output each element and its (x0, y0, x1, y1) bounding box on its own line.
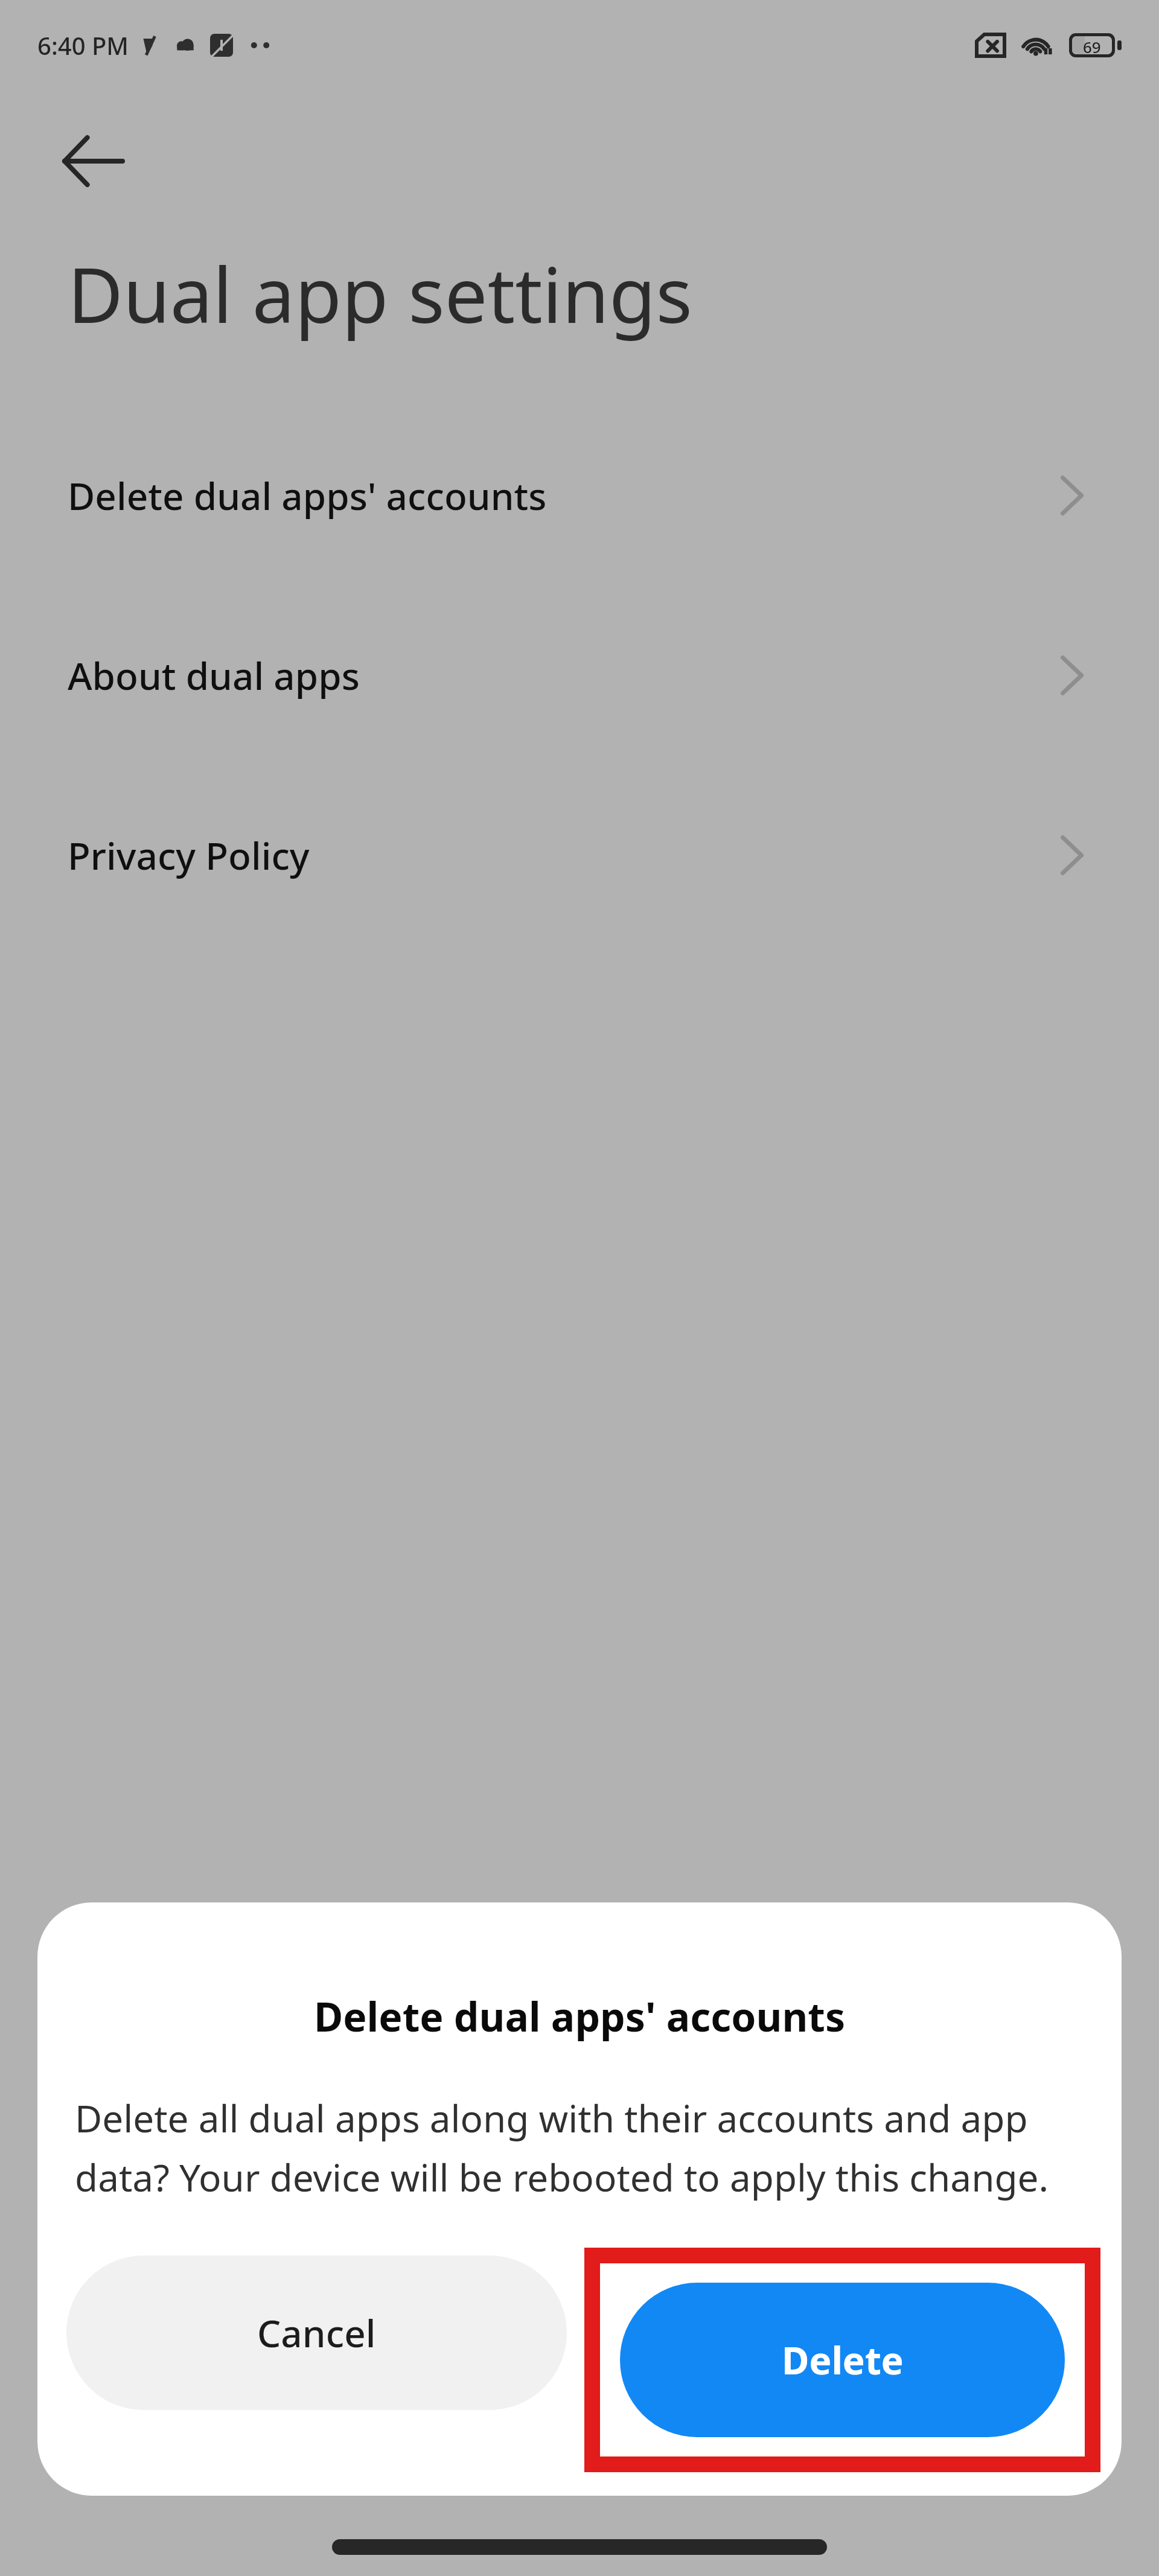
button[interactable]: Cancel (66, 2256, 567, 2410)
button[interactable]: Delete dual apps' accounts (0, 406, 1159, 585)
staticText: Delete dual apps' accounts (68, 1989, 1091, 2043)
staticText: Privacy Policy (68, 830, 1061, 881)
staticText: Delete dual apps' accounts (68, 470, 1061, 521)
button[interactable]: Delete (620, 2283, 1065, 2437)
staticText: 6:40 PM (37, 29, 129, 62)
staticText: Delete all dual apps along with their ac… (75, 2093, 1084, 2202)
staticText: 69 (1083, 36, 1101, 54)
staticText: Dual app settings (68, 241, 692, 345)
button[interactable]: Back (48, 116, 139, 206)
button[interactable]: About dual apps (0, 585, 1159, 765)
button[interactable]: Privacy Policy (0, 765, 1159, 945)
staticText: Cancel (257, 2307, 376, 2358)
staticText: About dual apps (68, 650, 1061, 701)
staticText: Delete (782, 2335, 904, 2385)
